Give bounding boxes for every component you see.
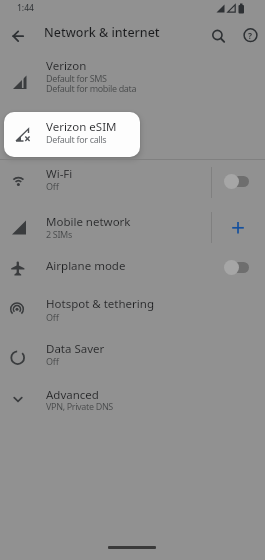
staticText: Default for calls	[46, 133, 107, 145]
button[interactable]	[225, 176, 249, 187]
button[interactable]: Advanced	[0, 377, 265, 424]
staticText: Off	[46, 180, 59, 192]
button[interactable]	[6, 24, 30, 48]
button[interactable]: Hotspot & tethering	[0, 287, 265, 335]
staticText: 2 SIMs	[46, 228, 72, 240]
staticText: Hotspot & tethering	[46, 296, 154, 312]
button[interactable]: Wi-Fi	[0, 160, 265, 206]
button[interactable]: Airplane mode	[0, 252, 265, 287]
button[interactable]	[206, 23, 230, 47]
staticText: Off	[46, 355, 59, 367]
staticText: Wi-Fi	[46, 166, 73, 182]
staticText: ?	[248, 30, 253, 42]
button[interactable]: Mobile network	[0, 206, 265, 252]
button[interactable]	[226, 215, 250, 241]
staticText: Advanced	[46, 387, 99, 403]
staticText: Off	[46, 311, 59, 323]
button[interactable]: ?	[238, 23, 263, 47]
staticText: Data Saver	[46, 341, 105, 357]
staticText: Verizon eSIM	[46, 119, 117, 135]
staticText: Airplane mode	[46, 258, 126, 274]
button[interactable]: Verizon eSIM	[4, 112, 140, 157]
staticText: Default for mobile data	[46, 82, 137, 94]
button[interactable]: Verizon	[0, 54, 265, 112]
staticText: VPN, Private DNS	[46, 400, 113, 412]
staticText: Verizon	[46, 58, 87, 74]
button[interactable]: Data Saver	[0, 335, 265, 377]
staticText: 1:44	[17, 2, 34, 14]
button[interactable]	[225, 262, 249, 273]
staticText: Default for SMS	[46, 72, 107, 84]
staticText: Network & internet	[44, 24, 160, 41]
staticText: Mobile network	[46, 214, 131, 230]
